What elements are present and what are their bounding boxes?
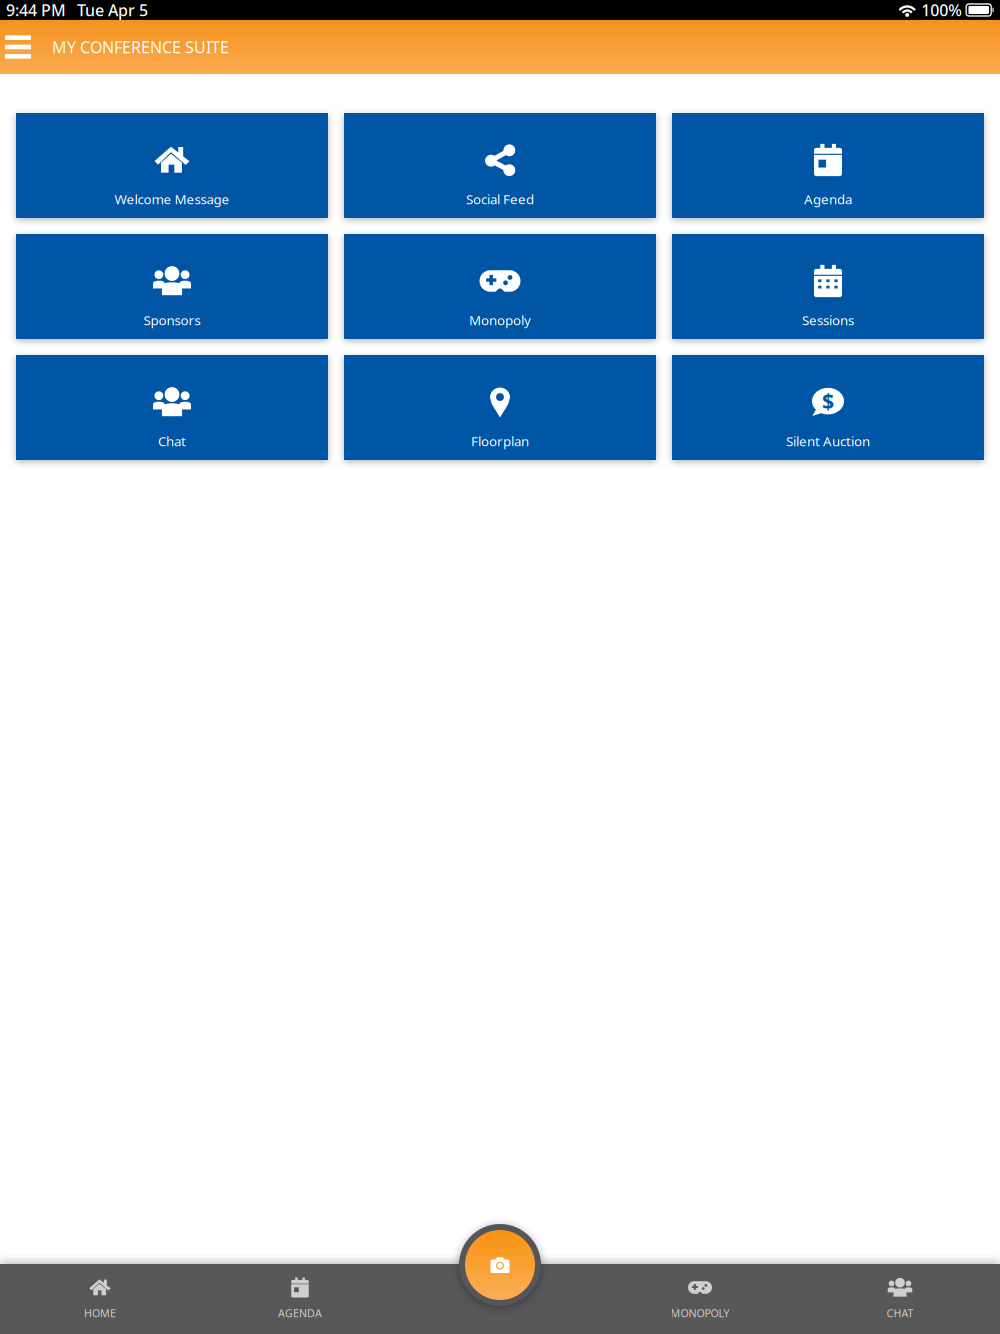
- button[interactable]: Agenda: [672, 113, 984, 218]
- staticText: $: [822, 387, 834, 415]
- staticText: Chat: [158, 432, 186, 450]
- staticText: HOME: [84, 1306, 116, 1320]
- staticText: Welcome Message: [114, 190, 229, 208]
- button[interactable]: Chat: [16, 355, 328, 460]
- button[interactable]: Monopoly: [344, 234, 656, 339]
- button[interactable]: Welcome Message: [16, 113, 328, 218]
- button[interactable]: CHAT: [800, 1264, 1000, 1334]
- staticText: 9:44 PM: [6, 0, 66, 21]
- staticText: 100%: [921, 0, 962, 21]
- staticText: Sessions: [802, 311, 854, 329]
- staticText: Agenda: [804, 190, 852, 208]
- staticText: Tue Apr 5: [77, 0, 148, 21]
- button[interactable]: Sessions: [672, 234, 984, 339]
- button[interactable]: Menu: [0, 22, 36, 72]
- button[interactable]: Floorplan: [344, 355, 656, 460]
- button[interactable]: AGENDA: [200, 1264, 400, 1334]
- staticText: MY CONFERENCE SUITE: [52, 36, 229, 58]
- staticText: Floorplan: [471, 432, 529, 450]
- staticText: Social Feed: [466, 190, 534, 208]
- staticText: Sponsors: [143, 311, 200, 329]
- staticText: AGENDA: [278, 1306, 322, 1320]
- staticText: Silent Auction: [786, 432, 870, 450]
- button[interactable]: HOME: [0, 1264, 200, 1334]
- button[interactable]: $: [672, 355, 984, 460]
- staticText: MONOPOLY: [670, 1306, 729, 1320]
- button[interactable]: Camera: [459, 1224, 541, 1306]
- staticText: Monopoly: [469, 311, 531, 329]
- button[interactable]: MONOPOLY: [600, 1264, 800, 1334]
- staticText: CHAT: [886, 1306, 913, 1320]
- button[interactable]: Social Feed: [344, 113, 656, 218]
- button[interactable]: Sponsors: [16, 234, 328, 339]
